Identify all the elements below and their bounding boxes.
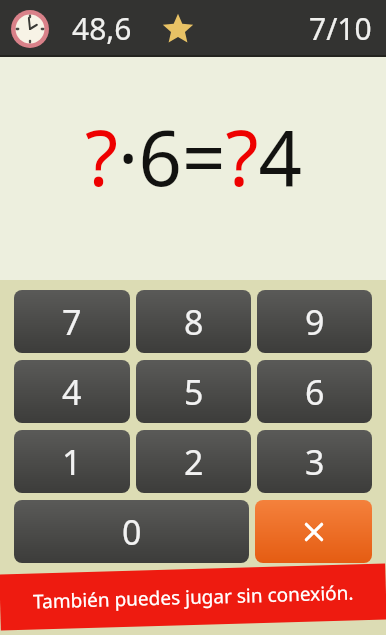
staticText: 0: [122, 509, 142, 555]
staticText: También puedes jugar sin conexión.: [33, 579, 354, 614]
button[interactable]: 2: [136, 430, 251, 493]
button[interactable]: 8: [136, 290, 251, 353]
button[interactable]: 7: [14, 290, 130, 353]
button[interactable]: Score star: [160, 11, 196, 47]
staticText: 3: [305, 439, 325, 485]
staticText: 6: [305, 369, 325, 415]
button[interactable]: Timer: [10, 9, 50, 49]
button[interactable]: 0: [14, 500, 249, 563]
staticText: 4: [62, 369, 82, 415]
button[interactable]: Delete: [255, 500, 372, 563]
button[interactable]: 5: [136, 360, 251, 423]
button[interactable]: 4: [14, 360, 130, 423]
staticText: ?·6=?4: [85, 105, 302, 209]
staticText: 2: [184, 439, 204, 485]
staticText: 1: [62, 439, 82, 485]
staticText: 7: [62, 299, 82, 345]
button[interactable]: 3: [257, 430, 372, 493]
staticText: 8: [184, 299, 204, 345]
button[interactable]: 6: [257, 360, 372, 423]
button[interactable]: 1: [14, 430, 130, 493]
button[interactable]: También puedes jugar sin conexión.: [0, 564, 386, 630]
staticText: 7/10: [309, 8, 372, 49]
button[interactable]: 9: [257, 290, 372, 353]
staticText: 9: [305, 299, 325, 345]
staticText: 5: [184, 369, 204, 415]
staticText: 48,6: [72, 8, 132, 49]
